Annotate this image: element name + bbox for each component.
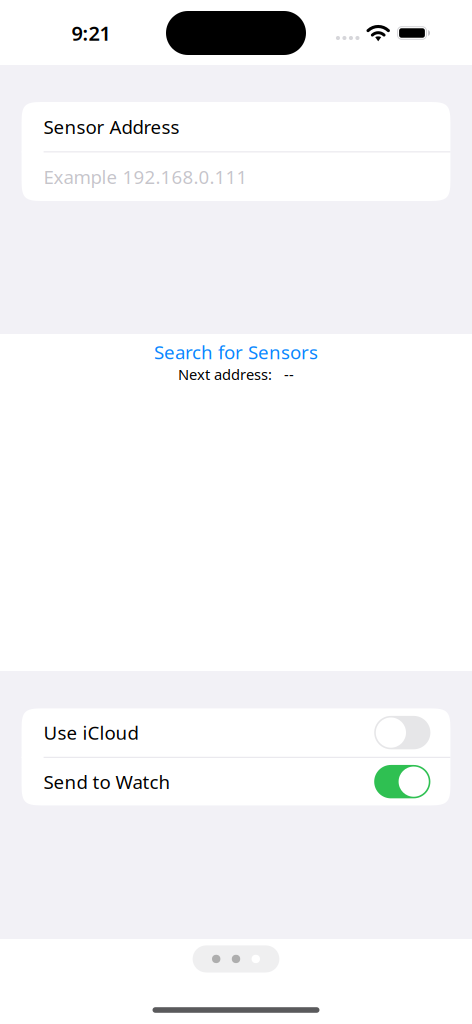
staticText: 9:21 xyxy=(71,20,110,46)
staticText: Example 192.168.0.111 xyxy=(44,164,248,189)
staticText: Send to Watch xyxy=(44,769,171,794)
staticText: Next address: -- xyxy=(178,364,294,384)
staticText: Search for Sensors xyxy=(154,340,318,364)
button[interactable]: Search for Sensors xyxy=(154,339,318,364)
button[interactable]: Example 192.168.0.111 xyxy=(22,152,450,201)
staticText: Use iCloud xyxy=(44,720,139,745)
button[interactable]: Send to Watch xyxy=(22,758,450,805)
button[interactable]: Use iCloud xyxy=(22,708,450,757)
button[interactable]: Sensor Address xyxy=(22,102,450,151)
staticText: Sensor Address xyxy=(44,114,180,139)
